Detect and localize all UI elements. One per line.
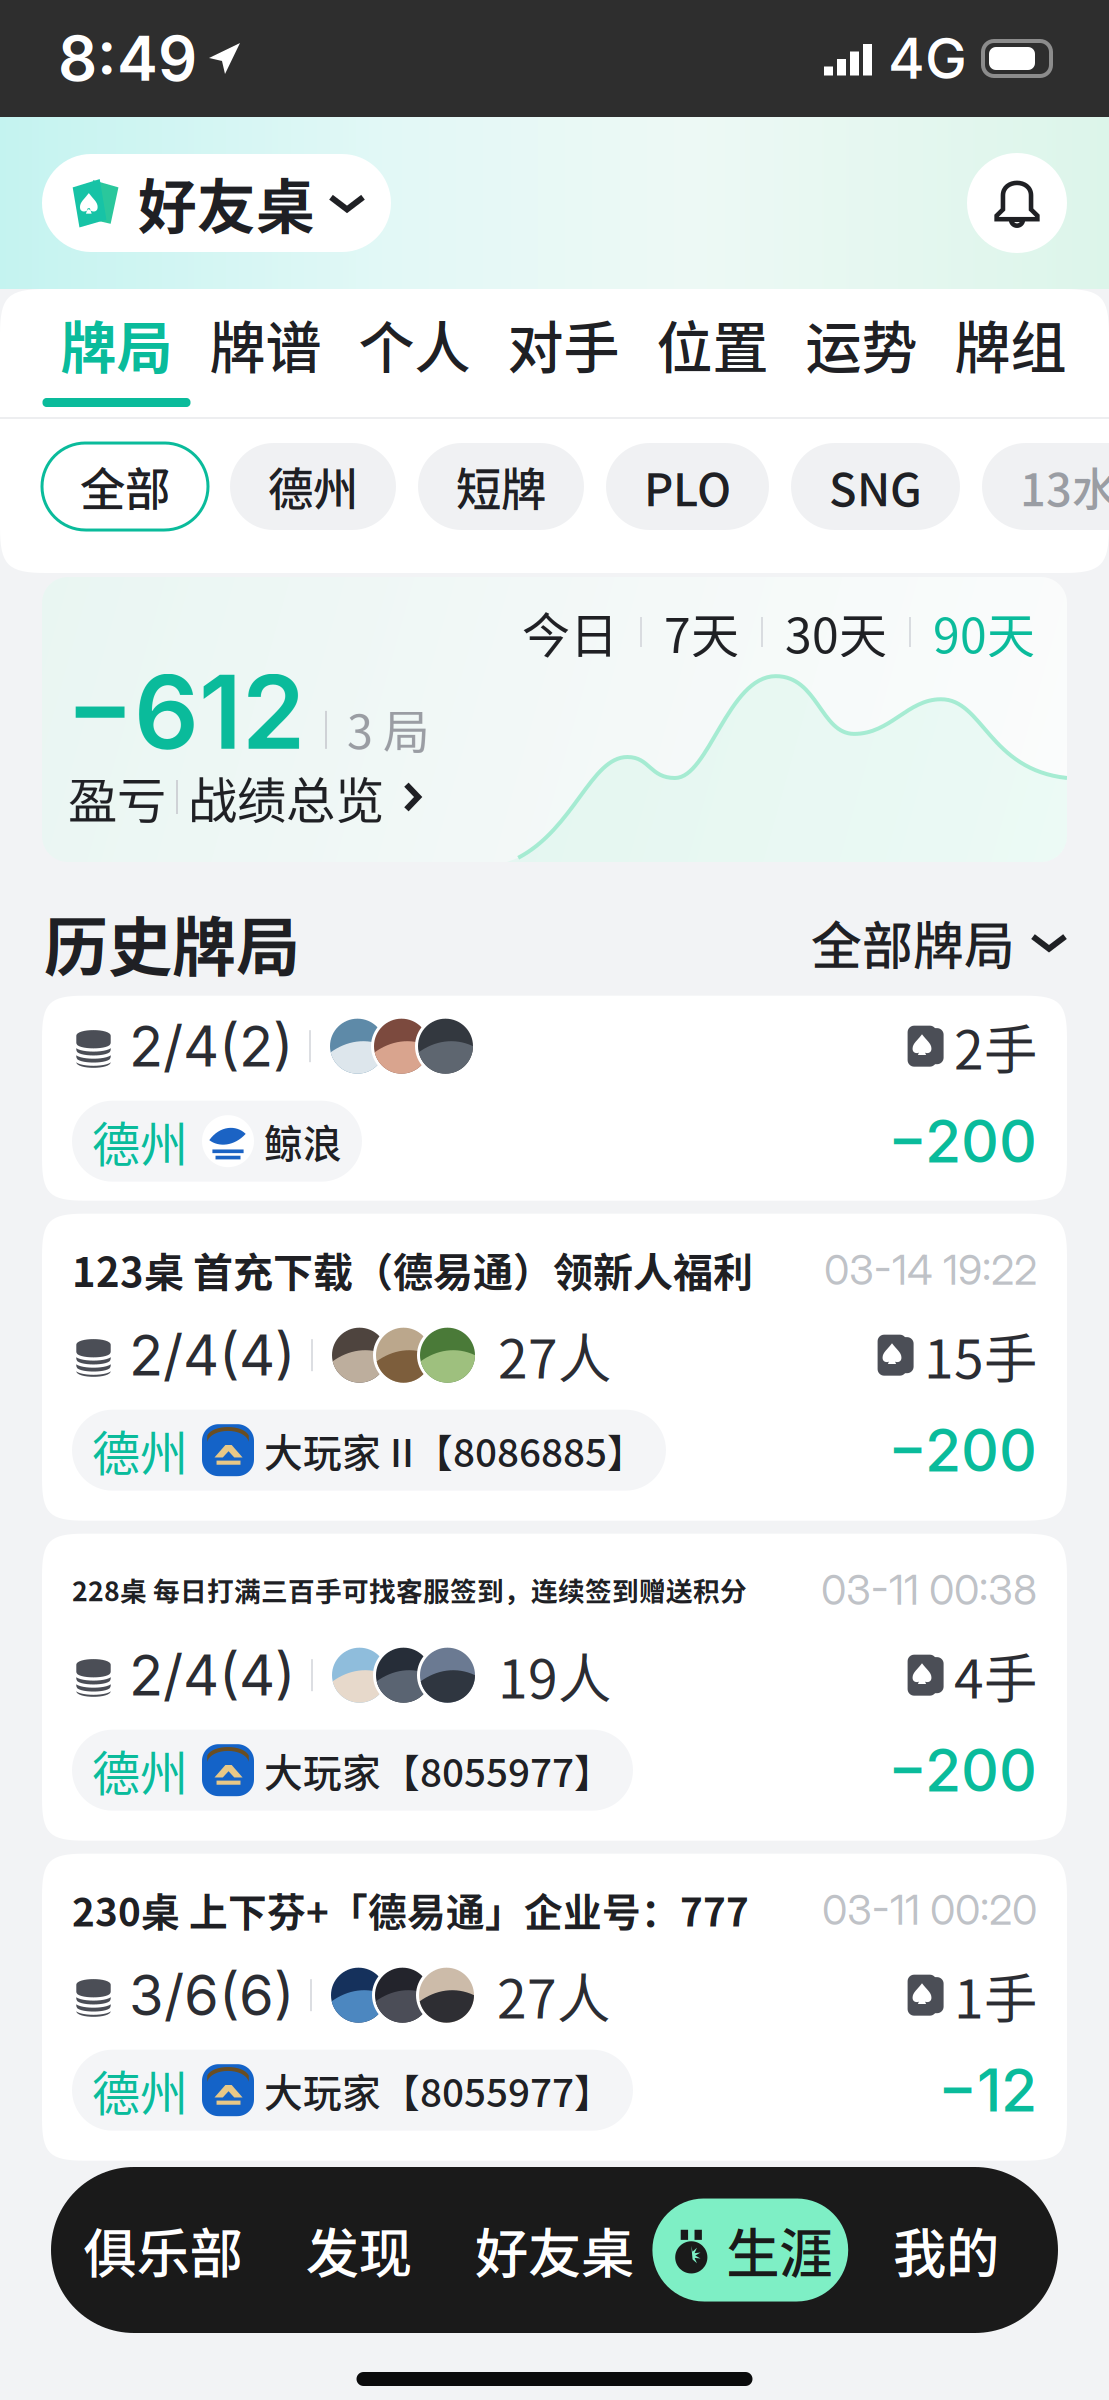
staticText: 03-11 00:20 bbox=[822, 1885, 1037, 1935]
staticText: 大玩家【8055977】 bbox=[264, 2062, 613, 2118]
staticText: 2手 bbox=[954, 1008, 1037, 1085]
staticText: 德州 bbox=[92, 1735, 188, 1805]
staticText: 7天 bbox=[664, 597, 739, 667]
button[interactable]: PLO bbox=[606, 443, 769, 530]
staticText: 位置 bbox=[656, 303, 768, 384]
staticText: 好友桌 bbox=[475, 2211, 634, 2289]
staticText: 2/4(4) bbox=[129, 1641, 295, 1709]
staticText: 123桌 首充下载（德易通）领新人福利 bbox=[72, 1241, 753, 1299]
button[interactable]: Notifications bbox=[967, 153, 1067, 253]
staticText: 牌局 bbox=[60, 303, 172, 384]
staticText: −12 bbox=[938, 2055, 1037, 2126]
button[interactable]: 位置 bbox=[638, 289, 787, 417]
staticText: 发现 bbox=[306, 2211, 412, 2289]
staticText: 全部 bbox=[80, 454, 170, 519]
button[interactable]: 短牌 bbox=[418, 443, 584, 530]
staticText: 30天 bbox=[785, 597, 887, 667]
staticText: 牌谱 bbox=[209, 303, 321, 384]
staticText: 19人 bbox=[498, 1637, 611, 1714]
button[interactable]: 全部 bbox=[42, 443, 208, 530]
staticText: 短牌 bbox=[456, 454, 546, 519]
button[interactable]: 牌组 bbox=[936, 289, 1085, 417]
staticText: 生涯 bbox=[726, 2211, 832, 2289]
staticText: 27人 bbox=[498, 1317, 611, 1394]
staticText: 13水 bbox=[1020, 454, 1109, 519]
staticText: 运势 bbox=[805, 303, 917, 384]
button[interactable]: 俱乐部 bbox=[65, 2198, 261, 2301]
staticText: 俱乐部 bbox=[83, 2211, 242, 2289]
staticText: −200 bbox=[888, 1735, 1037, 1806]
staticText: 3 局 bbox=[347, 695, 430, 762]
staticText: 好友桌 bbox=[138, 160, 315, 245]
staticText: 03-14 19:22 bbox=[824, 1245, 1037, 1295]
staticText: 2/4(2) bbox=[129, 1012, 293, 1080]
button[interactable]: 生涯 bbox=[652, 2198, 848, 2301]
staticText: 228桌 每日打满三百手可找客服签到，连续签到赠送积分 bbox=[72, 1570, 747, 1609]
staticText: 对手 bbox=[507, 303, 619, 384]
staticText: 我的 bbox=[893, 2211, 999, 2289]
staticText: 8:49 bbox=[58, 21, 197, 96]
staticText: 盈亏 bbox=[68, 761, 166, 833]
staticText: 90天 bbox=[933, 597, 1035, 667]
button[interactable]: 好友桌 bbox=[42, 154, 391, 252]
button[interactable]: 牌局 bbox=[42, 289, 191, 417]
staticText: 个人 bbox=[358, 303, 470, 384]
staticText: 牌组 bbox=[954, 303, 1066, 384]
staticText: 德州 bbox=[92, 1106, 188, 1176]
button[interactable]: 好友桌 bbox=[457, 2198, 652, 2301]
staticText: SNG bbox=[829, 454, 922, 519]
staticText: 历史牌局 bbox=[44, 896, 300, 989]
staticText: 4手 bbox=[954, 1637, 1037, 1714]
staticText: 2/4(4) bbox=[129, 1321, 295, 1389]
button[interactable]: 德州 bbox=[230, 443, 396, 530]
staticText: 4G bbox=[888, 25, 967, 92]
button[interactable]: 个人 bbox=[340, 289, 489, 417]
staticText: 3/6(6) bbox=[129, 1961, 294, 2029]
button[interactable]: 运势 bbox=[787, 289, 936, 417]
staticText: −200 bbox=[888, 1106, 1037, 1177]
staticText: 230桌 上下芬+「德易通」企业号：777 bbox=[72, 1882, 749, 1938]
button[interactable]: 发现 bbox=[261, 2198, 457, 2301]
staticText: 德州 bbox=[92, 1415, 188, 1485]
staticText: 鲸浪 bbox=[264, 1113, 342, 1169]
button[interactable]: 牌谱 bbox=[191, 289, 340, 417]
button[interactable]: 全部牌局 bbox=[811, 906, 1065, 979]
staticText: 15手 bbox=[924, 1317, 1037, 1394]
button[interactable]: 13水 bbox=[982, 443, 1109, 530]
staticText: 1手 bbox=[954, 1957, 1037, 2034]
staticText: 大玩家【8055977】 bbox=[264, 1742, 613, 1798]
staticText: 德州 bbox=[92, 2055, 188, 2125]
staticText: 03-11 00:38 bbox=[821, 1565, 1037, 1615]
staticText: PLO bbox=[644, 454, 731, 519]
staticText: −612 bbox=[66, 651, 305, 773]
staticText: 今日 bbox=[522, 597, 618, 667]
button[interactable]: SNG bbox=[791, 443, 960, 530]
button[interactable]: 今日 bbox=[0, 573, 1109, 862]
staticText: 德州 bbox=[268, 454, 358, 519]
staticText: 27人 bbox=[497, 1957, 610, 2034]
staticText: −200 bbox=[888, 1415, 1037, 1486]
staticText: 全部牌局 bbox=[811, 906, 1015, 979]
staticText: 大玩家 II【8086885】 bbox=[264, 1422, 646, 1478]
button[interactable]: 对手 bbox=[489, 289, 638, 417]
staticText: 战绩总览 bbox=[188, 761, 384, 833]
button[interactable]: 我的 bbox=[848, 2198, 1044, 2301]
